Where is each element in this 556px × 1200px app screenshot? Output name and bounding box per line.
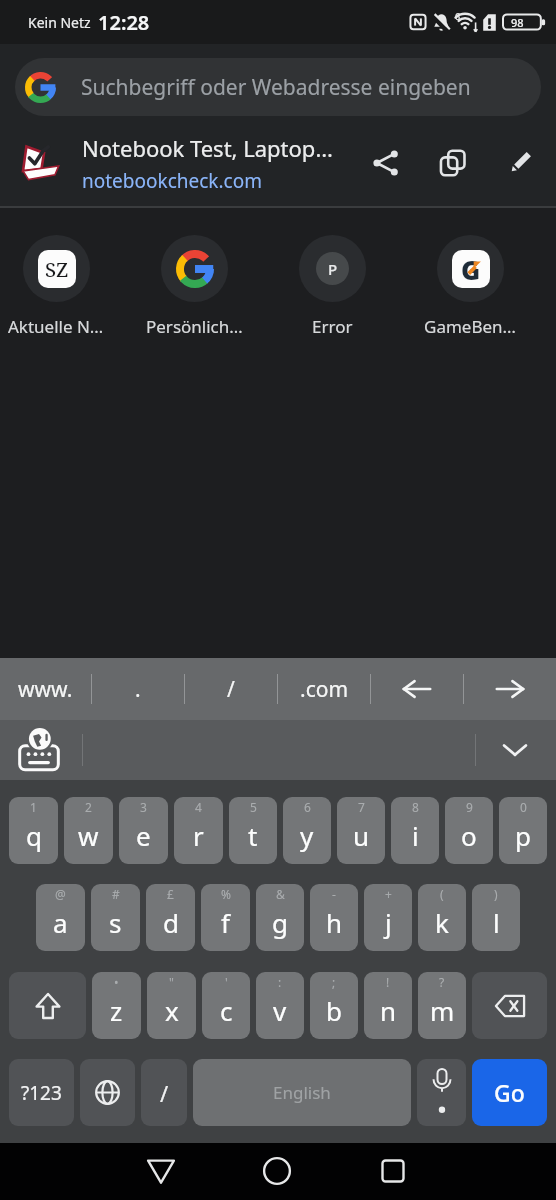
staticText: q: [26, 818, 42, 853]
button[interactable]: 7: [337, 797, 385, 864]
button[interactable]: [137, 1147, 185, 1195]
staticText: Aktuelle N…: [8, 315, 104, 338]
staticText: %: [221, 886, 231, 902]
button[interactable]: +: [364, 884, 412, 951]
staticText: /: [160, 1078, 169, 1108]
button[interactable]: Persönlich…: [129, 235, 259, 338]
staticText: c: [220, 993, 233, 1028]
button[interactable]: SZ: [0, 235, 121, 338]
staticText: 6: [455, 10, 461, 22]
staticText: ?: [439, 974, 445, 990]
button[interactable]: [371, 658, 463, 720]
button[interactable]: %: [201, 884, 250, 951]
staticText: 2: [85, 799, 92, 815]
button[interactable]: ;: [310, 972, 358, 1039]
button[interactable]: @: [36, 884, 85, 951]
staticText: a: [53, 905, 68, 940]
button[interactable]: Suchbegriff oder Webadresse eingeben: [15, 58, 541, 116]
staticText: 3: [140, 799, 147, 815]
button[interactable]: ": [147, 972, 196, 1039]
staticText: P: [328, 259, 338, 279]
button[interactable]: Go: [472, 1059, 547, 1126]
button[interactable]: [498, 141, 542, 185]
button[interactable]: www.: [0, 658, 91, 720]
button[interactable]: [364, 141, 408, 185]
button[interactable]: .: [92, 658, 184, 720]
button[interactable]: :: [256, 972, 304, 1039]
staticText: ?123: [21, 1080, 62, 1106]
button[interactable]: &: [256, 884, 304, 951]
staticText: Kein Netz: [28, 13, 91, 32]
button[interactable]: £: [146, 884, 195, 951]
button[interactable]: [464, 658, 556, 720]
staticText: g: [272, 905, 288, 940]
staticText: £: [167, 886, 174, 902]
button[interactable]: 3: [119, 797, 168, 864]
staticText: SZ: [45, 256, 69, 283]
button[interactable]: .com: [278, 658, 370, 720]
staticText: •: [114, 974, 119, 990]
button[interactable]: [369, 1147, 417, 1195]
staticText: s: [109, 905, 122, 940]
button[interactable]: ?123: [9, 1059, 74, 1126]
button[interactable]: 0: [499, 797, 547, 864]
button[interactable]: 5: [229, 797, 277, 864]
button[interactable]: /: [141, 1059, 187, 1126]
button[interactable]: #: [91, 884, 140, 951]
button[interactable]: !: [364, 972, 412, 1039]
button[interactable]: /: [185, 658, 277, 720]
staticText: .: [135, 675, 141, 704]
staticText: G: [461, 252, 481, 287]
button[interactable]: [492, 726, 538, 774]
staticText: ;: [332, 974, 336, 990]
button[interactable]: [14, 726, 64, 774]
staticText: (: [440, 886, 444, 902]
staticText: @: [55, 886, 66, 902]
button[interactable]: 2: [64, 797, 113, 864]
button[interactable]: ): [472, 884, 520, 951]
button[interactable]: [80, 1059, 135, 1126]
button[interactable]: 9: [445, 797, 493, 864]
staticText: +: [385, 886, 392, 902]
button[interactable]: [9, 972, 86, 1039]
button[interactable]: [472, 972, 547, 1039]
button[interactable]: (: [418, 884, 466, 951]
staticText: b: [326, 993, 342, 1028]
staticText: Notebook Test, Laptop…: [82, 133, 333, 163]
button[interactable]: 8: [391, 797, 439, 864]
staticText: 12:28: [98, 9, 150, 36]
staticText: n: [380, 993, 397, 1028]
staticText: www.: [18, 675, 73, 704]
button[interactable]: G: [405, 235, 535, 338]
button[interactable]: 6: [283, 797, 331, 864]
staticText: 7: [358, 799, 365, 815]
button[interactable]: ': [202, 972, 250, 1039]
button[interactable]: [431, 141, 475, 185]
staticText: 98: [511, 15, 524, 30]
button[interactable]: Notebook Test, Laptop…: [0, 120, 556, 206]
button[interactable]: English: [193, 1059, 411, 1126]
staticText: h: [326, 905, 343, 940]
staticText: 4: [195, 799, 202, 815]
button[interactable]: P: [267, 235, 397, 338]
button[interactable]: -: [310, 884, 358, 951]
staticText: 9: [466, 799, 473, 815]
staticText: e: [136, 818, 151, 853]
button[interactable]: ?: [418, 972, 466, 1039]
staticText: :: [278, 974, 282, 990]
button[interactable]: 1: [9, 797, 58, 864]
staticText: i: [412, 818, 419, 853]
button[interactable]: [417, 1059, 466, 1126]
button[interactable]: 4: [174, 797, 223, 864]
staticText: Go: [494, 1077, 525, 1108]
staticText: t: [248, 818, 258, 853]
button[interactable]: [253, 1147, 301, 1195]
staticText: ): [494, 886, 498, 902]
button[interactable]: •: [92, 972, 141, 1039]
staticText: Suchbegriff oder Webadresse eingeben: [81, 73, 471, 102]
staticText: d: [163, 905, 179, 940]
staticText: .com: [300, 675, 349, 704]
staticText: ": [169, 974, 174, 990]
staticText: !: [386, 974, 390, 990]
staticText: Persönlich…: [146, 315, 243, 338]
